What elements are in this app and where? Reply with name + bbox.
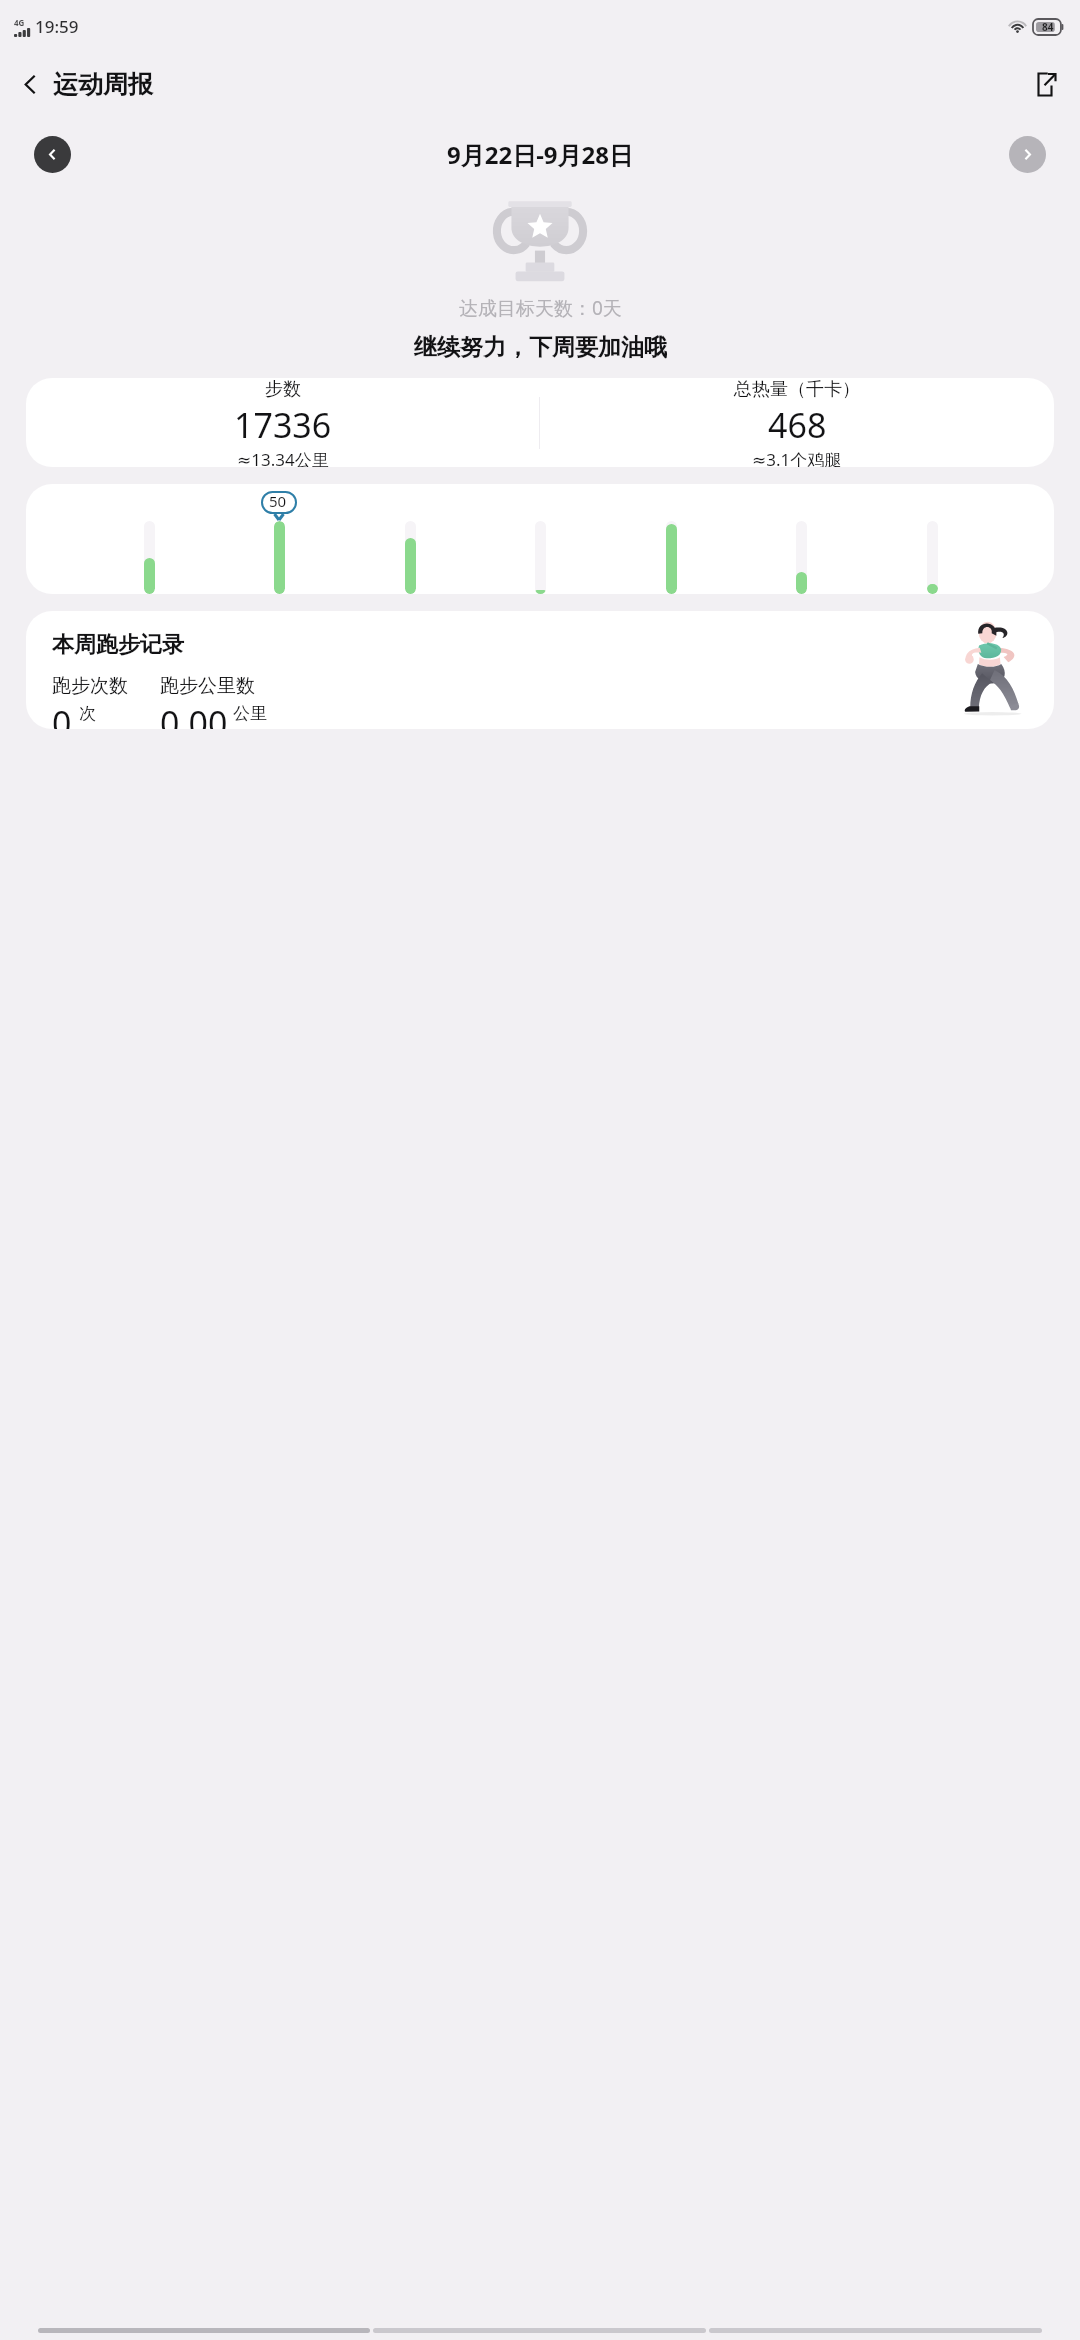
button[interactable]: 步数 <box>26 378 1054 467</box>
staticText: 运动周报 <box>53 69 153 100</box>
staticText: 跑步次数 <box>52 674 128 698</box>
staticText: 跑步公里数 <box>160 674 255 698</box>
staticText: 0.00 <box>160 700 228 729</box>
staticText: 0 <box>52 700 72 729</box>
button[interactable]: Next week <box>1009 136 1046 173</box>
button[interactable]: 5002 <box>26 484 1054 594</box>
staticText: 9月22日-9月28日 <box>447 138 634 171</box>
staticText: 公里 <box>233 703 267 724</box>
staticText: 步数 <box>265 378 301 401</box>
staticText: 84 <box>1042 20 1054 34</box>
button[interactable]: Back <box>6 60 54 108</box>
staticText: 19:59 <box>35 15 79 38</box>
staticText: 达成目标天数：0天 <box>459 295 622 321</box>
button[interactable]: Previous week <box>34 136 71 173</box>
staticText: 继续努力，下周要加油哦 <box>414 333 667 362</box>
button[interactable]: 本周跑步记录 <box>26 611 1054 729</box>
staticText: 17336 <box>234 402 332 448</box>
staticText: ≈3.1个鸡腿 <box>752 448 842 467</box>
staticText: 468 <box>768 402 827 448</box>
staticText: 4G <box>14 17 25 28</box>
staticText: 总热量（千卡） <box>734 378 860 401</box>
staticText: 次 <box>79 703 96 724</box>
staticText: 5002 <box>269 491 289 514</box>
button[interactable]: Share <box>1020 60 1068 108</box>
staticText: ≈13.34公里 <box>237 448 329 467</box>
staticText: 本周跑步记录 <box>52 631 184 659</box>
